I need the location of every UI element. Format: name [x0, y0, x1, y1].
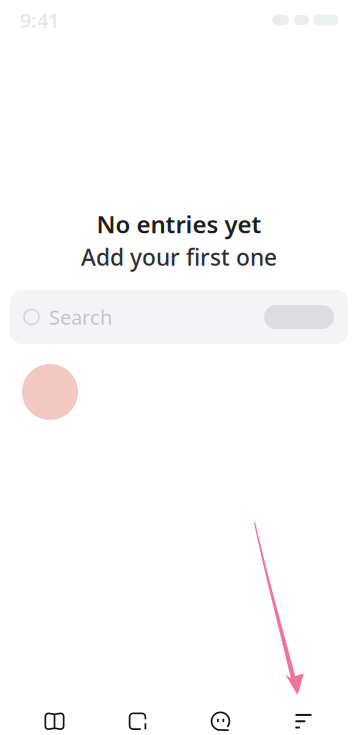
button[interactable]: Chat	[179, 699, 262, 735]
button[interactable]: Library	[13, 699, 96, 735]
staticText: No entries yet	[96, 208, 261, 240]
staticText: Add your first one	[81, 242, 277, 272]
button[interactable]: Notes	[262, 700, 345, 735]
staticText: Search	[49, 304, 112, 330]
button[interactable]: Capture	[96, 699, 179, 735]
staticText: 9:41	[20, 7, 59, 33]
